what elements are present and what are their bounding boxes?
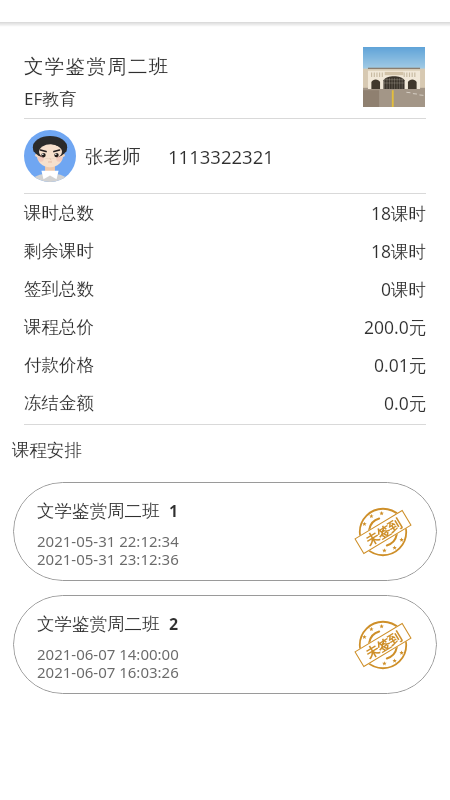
- staticText: 未签到: [363, 515, 404, 549]
- button[interactable]: 文学鉴赏周二班: [0, 27, 450, 118]
- button[interactable]: 付款价格: [0, 346, 450, 384]
- staticText: 2021-06-07 14:00:00 2021-06-07 16:03:26: [37, 644, 179, 682]
- staticText: EF教育: [24, 87, 77, 110]
- other: 未签到: [355, 617, 411, 673]
- staticText: 文学鉴赏周二班: [37, 500, 160, 522]
- staticText: 200.0元: [364, 315, 427, 339]
- staticText: 文学鉴赏周二班: [24, 54, 170, 79]
- button[interactable]: 老师头像: [0, 119, 450, 193]
- staticText: 签到总数: [24, 278, 94, 300]
- button[interactable]: 签到总数: [0, 270, 450, 308]
- staticText: 0.01元: [374, 353, 427, 377]
- staticText: 张老师: [85, 145, 141, 168]
- staticText: 1113322321: [168, 144, 274, 169]
- staticText: 2021-05-31 22:12:34 2021-05-31 23:12:36: [37, 531, 179, 569]
- staticText: 2: [169, 613, 179, 635]
- staticText: 0课时: [381, 277, 427, 301]
- button[interactable]: 文学鉴赏周二班: [13, 595, 437, 694]
- staticText: 剩余课时: [24, 240, 94, 262]
- button[interactable]: 文学鉴赏周二班: [13, 482, 437, 581]
- staticText: 课程总价: [24, 316, 94, 338]
- staticText: 未签到: [363, 628, 404, 662]
- staticText: 18课时: [371, 201, 427, 225]
- staticText: 课时总数: [24, 202, 94, 224]
- staticText: 课程安排: [12, 439, 82, 461]
- button[interactable]: 剩余课时: [0, 232, 450, 270]
- button[interactable]: 课时总数: [0, 194, 450, 232]
- staticText: 1: [169, 500, 179, 522]
- other: 未签到: [355, 504, 411, 560]
- button[interactable]: 课程封面图片: [363, 47, 425, 107]
- button[interactable]: 老师头像: [24, 130, 76, 182]
- staticText: 冻结金额: [24, 392, 94, 414]
- staticText: 0.0元: [384, 391, 427, 415]
- button[interactable]: 课程总价: [0, 308, 450, 346]
- staticText: 18课时: [371, 239, 427, 263]
- button[interactable]: 冻结金额: [0, 384, 450, 422]
- staticText: 文学鉴赏周二班: [37, 613, 160, 635]
- staticText: 付款价格: [24, 354, 94, 376]
